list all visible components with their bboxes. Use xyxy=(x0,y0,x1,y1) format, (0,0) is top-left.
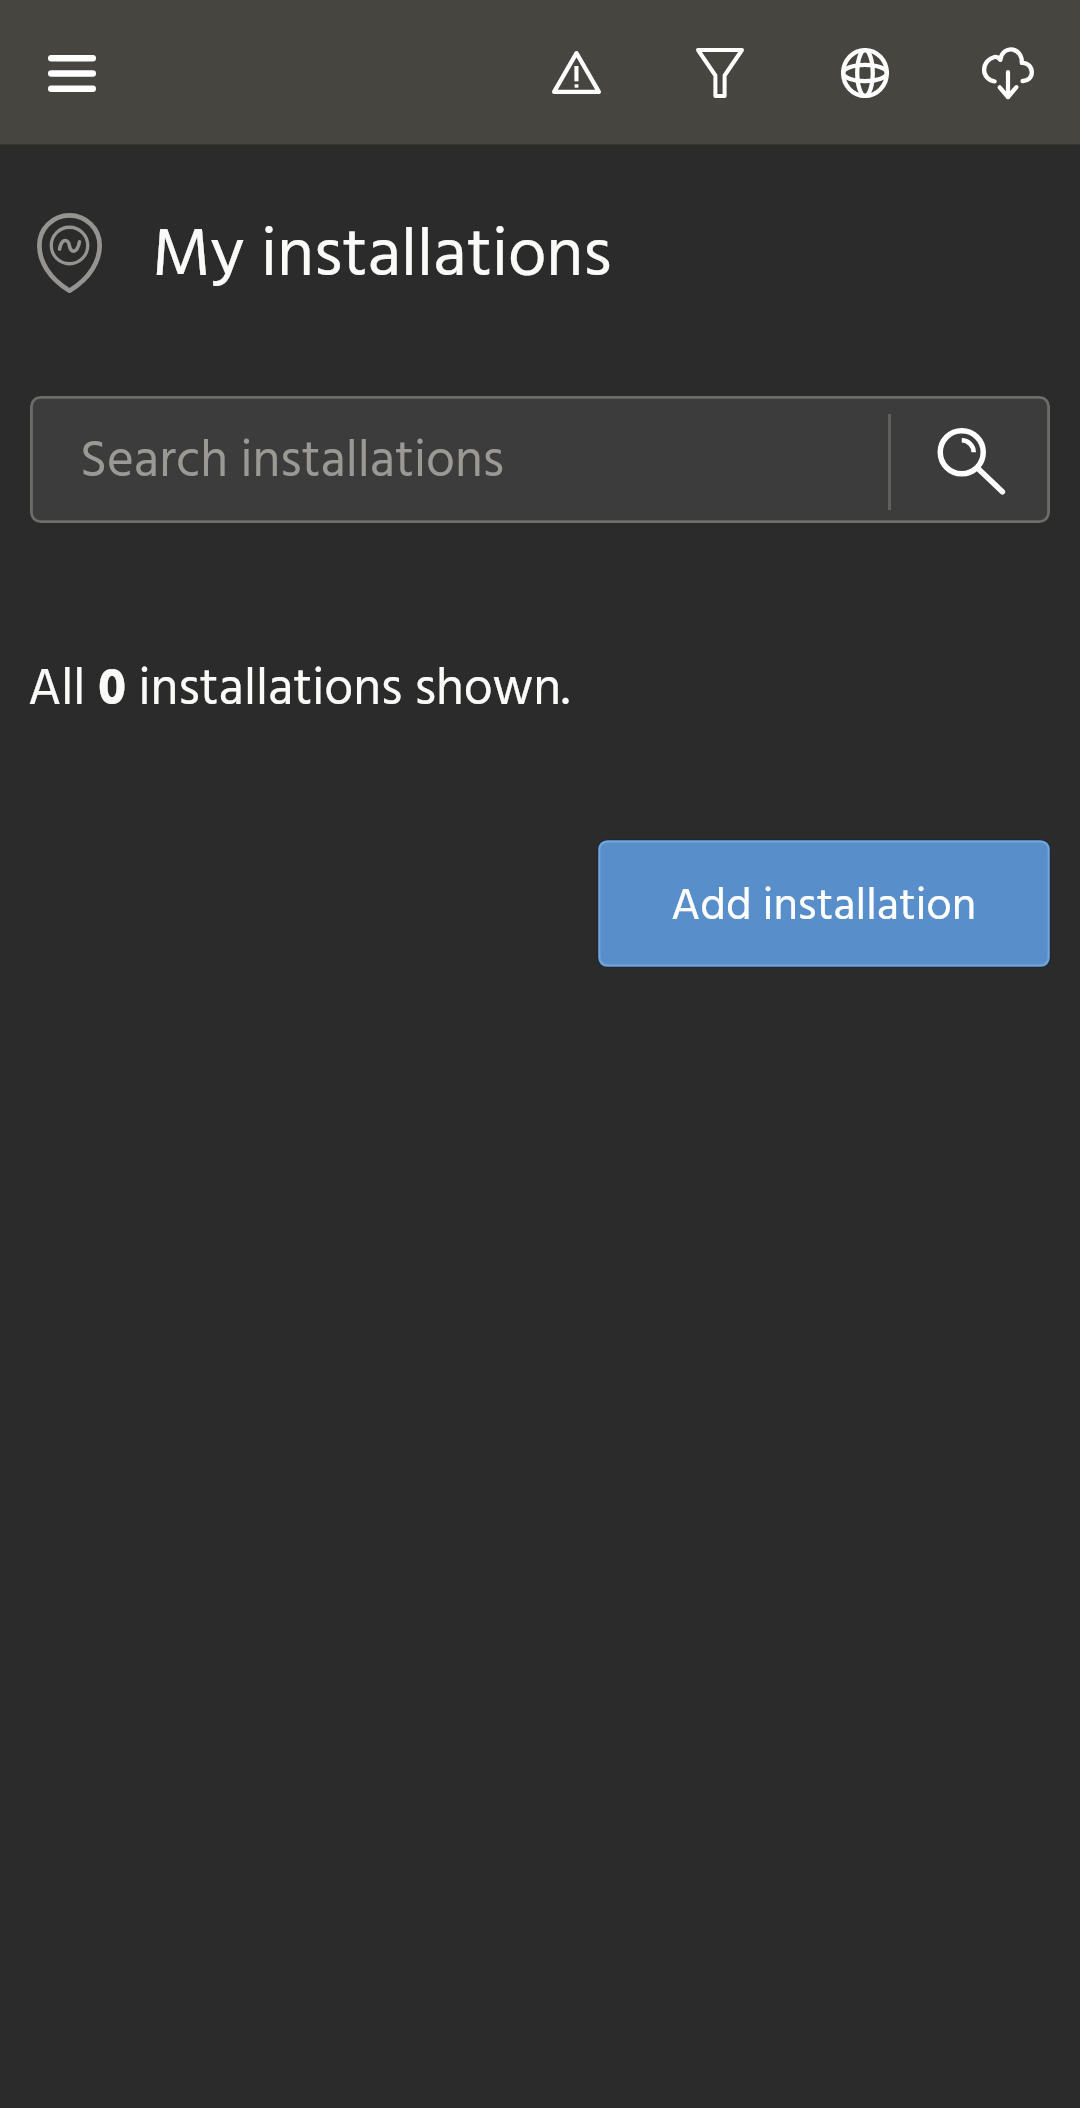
staticText: Search installations xyxy=(80,422,504,504)
button[interactable]: Filter xyxy=(648,0,792,144)
button[interactable]: Open navigation menu xyxy=(0,0,144,144)
button[interactable]: Warnings xyxy=(504,0,648,144)
button[interactable]: Search xyxy=(30,396,1050,523)
button[interactable]: Download xyxy=(936,0,1080,144)
button[interactable]: Search xyxy=(891,396,1050,523)
staticText: All 0 installations shown. xyxy=(28,650,570,732)
staticText: Add installation xyxy=(671,871,977,944)
button[interactable] xyxy=(597,839,1051,968)
staticText: My installations xyxy=(152,203,612,313)
button[interactable]: Language xyxy=(792,0,936,144)
